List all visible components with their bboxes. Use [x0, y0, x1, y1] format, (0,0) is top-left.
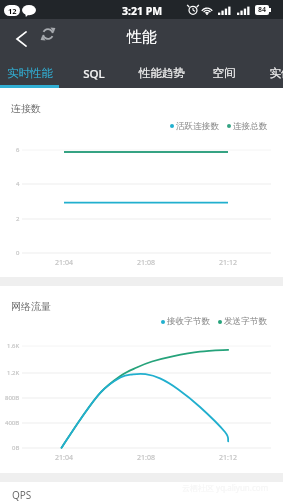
button[interactable]	[250, 55, 283, 88]
staticText: 21:04	[55, 453, 73, 463]
staticText: 实例	[241, 66, 283, 80]
button[interactable]	[122, 55, 198, 88]
staticText: 3:21 PM	[102, 4, 182, 18]
button[interactable]	[59, 55, 123, 88]
staticText: 4	[16, 180, 20, 188]
staticText: 接收字节数	[167, 316, 210, 327]
staticText: 84	[258, 5, 267, 15]
staticText: 21:12	[219, 453, 237, 463]
staticText: 21:08	[137, 258, 155, 268]
staticText: 2	[16, 215, 20, 223]
staticText: 发送字节数	[224, 316, 267, 327]
staticText: 0B	[12, 444, 20, 452]
staticText: 6	[16, 146, 20, 154]
button[interactable]	[0, 55, 59, 88]
staticText: 连接数	[11, 102, 41, 115]
staticText: 21:08	[137, 453, 155, 463]
button[interactable]: Back	[5, 19, 38, 52]
staticText: 12	[8, 6, 17, 16]
button[interactable]: Refresh	[34, 19, 62, 47]
staticText: 云栖社区 yq.aliyun.com	[182, 482, 269, 493]
staticText: 1.6K	[7, 342, 20, 350]
staticText: 21:04	[55, 258, 73, 268]
staticText: 0	[16, 249, 20, 257]
staticText: 活跃连接数	[176, 121, 219, 132]
staticText: 空间	[184, 66, 264, 80]
staticText: 网络流量	[11, 300, 51, 313]
staticText: 21:12	[219, 258, 237, 268]
staticText: QPS	[12, 488, 32, 502]
staticText: 400B	[5, 419, 20, 427]
staticText: 1.2K	[7, 369, 20, 377]
button[interactable]	[199, 55, 250, 88]
staticText: 性能趋势	[122, 66, 202, 80]
staticText: 连接总数	[233, 121, 268, 132]
staticText: SQL	[54, 66, 134, 82]
staticText: 实时性能	[0, 66, 70, 80]
staticText: 性能	[127, 28, 157, 47]
staticText: 800B	[5, 394, 20, 402]
